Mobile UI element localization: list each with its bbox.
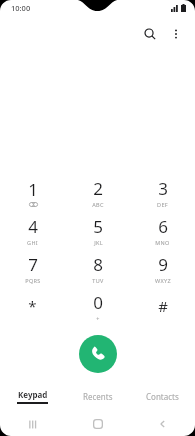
staticText: 5 xyxy=(93,215,103,238)
staticText: 8 xyxy=(93,253,103,276)
staticText: + xyxy=(96,315,100,322)
staticText: 9 xyxy=(158,253,168,276)
staticText: MNO xyxy=(155,239,170,246)
button[interactable]: 4 xyxy=(0,212,65,250)
button[interactable]: Keypad xyxy=(0,386,65,406)
staticText: 7 xyxy=(28,253,38,276)
button[interactable]: 7 xyxy=(0,250,65,288)
staticText: 2 xyxy=(93,177,103,200)
staticText: 6 xyxy=(158,215,168,238)
staticText: 3 xyxy=(158,177,168,200)
button[interactable]: 6 xyxy=(130,212,195,250)
button[interactable]: Home xyxy=(65,412,130,436)
button[interactable]: * xyxy=(0,288,65,326)
staticText: DEF xyxy=(157,201,168,208)
button[interactable]: 9 xyxy=(130,250,195,288)
button[interactable]: Back xyxy=(130,412,195,436)
staticText: JKL xyxy=(94,239,103,246)
button[interactable]: Recent apps xyxy=(0,412,65,436)
staticText: TUV xyxy=(92,277,104,284)
button[interactable]: More options xyxy=(163,21,189,47)
button[interactable]: 3 xyxy=(130,174,195,212)
button[interactable]: Search xyxy=(137,21,163,47)
button[interactable]: 5 xyxy=(65,212,130,250)
button[interactable]: Call xyxy=(79,335,117,373)
staticText: 4 xyxy=(28,215,38,238)
button[interactable]: # xyxy=(130,288,195,326)
button[interactable]: Recents xyxy=(65,386,130,406)
button[interactable]: Contacts xyxy=(130,386,195,406)
button[interactable]: 0 xyxy=(65,288,130,326)
button[interactable]: 2 xyxy=(65,174,130,212)
staticText: ABC xyxy=(92,201,104,208)
button[interactable]: 8 xyxy=(65,250,130,288)
staticText: # xyxy=(158,296,168,316)
staticText: 1 xyxy=(28,178,38,201)
staticText: 0 xyxy=(93,291,103,314)
button[interactable]: 1 xyxy=(0,174,65,212)
staticText: Recents xyxy=(83,391,113,402)
staticText: 10:00 xyxy=(11,3,31,13)
staticText: * xyxy=(28,296,37,316)
staticText: GHI xyxy=(27,239,38,246)
staticText: WXYZ xyxy=(155,277,171,284)
staticText: Contacts xyxy=(146,391,179,402)
staticText: PQRS xyxy=(25,277,41,284)
staticText: Keypad xyxy=(18,389,48,400)
